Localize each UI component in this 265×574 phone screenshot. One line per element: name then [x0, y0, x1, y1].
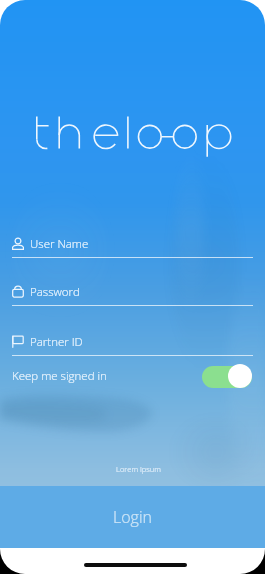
- button[interactable]: User Name: [0, 236, 265, 258]
- button[interactable]: Partner ID: [0, 334, 265, 356]
- staticText: Lorem Ipsum: [12, 464, 265, 474]
- staticText: Login: [113, 506, 152, 528]
- staticText: User Name: [30, 236, 89, 250]
- staticText: Password: [30, 284, 80, 298]
- button[interactable]: Login: [0, 486, 265, 548]
- button[interactable]: Password: [0, 284, 265, 306]
- button[interactable]: Keep me signed in: [202, 364, 252, 388]
- staticText: Partner ID: [30, 334, 83, 348]
- staticText: Keep me signed in: [12, 368, 107, 384]
